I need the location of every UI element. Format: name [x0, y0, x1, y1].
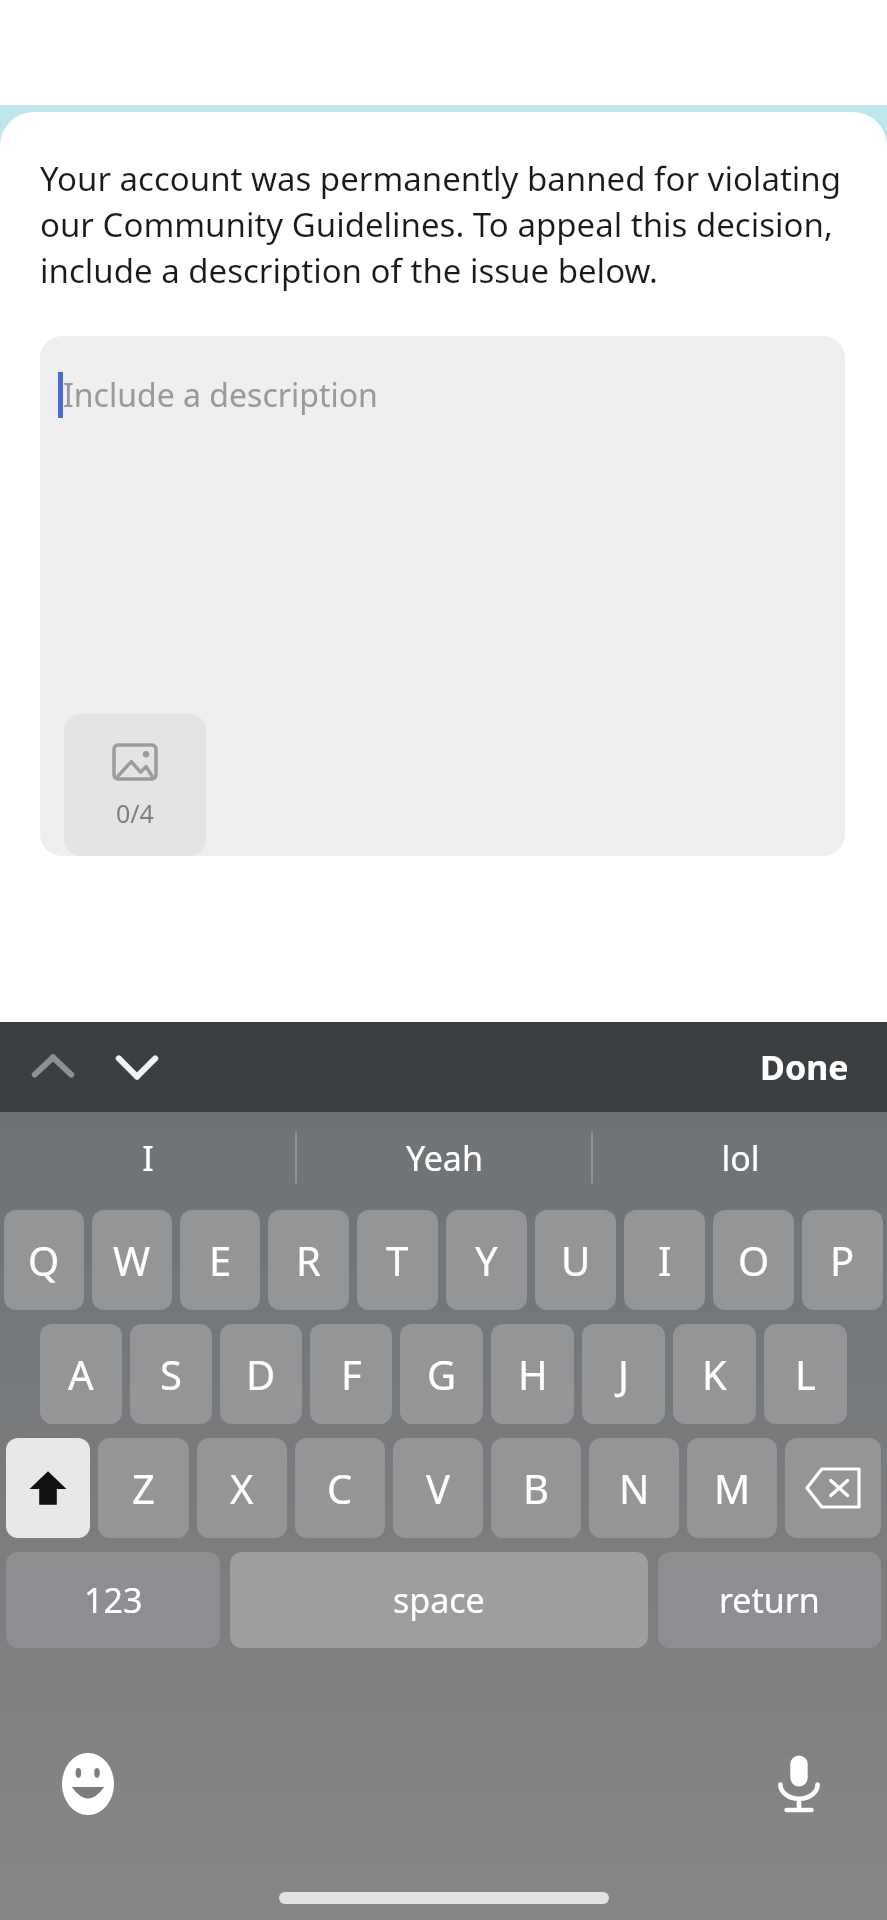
button[interactable]: A — [40, 1324, 122, 1424]
staticText: E — [209, 1233, 232, 1287]
button[interactable]: Next field — [106, 1036, 168, 1098]
staticText: 0/4 — [116, 796, 154, 830]
button[interactable]: W — [92, 1210, 172, 1310]
button[interactable]: Include a description — [40, 336, 845, 856]
staticText: L — [795, 1347, 816, 1401]
button[interactable]: Backspace — [785, 1438, 881, 1538]
button[interactable]: U — [535, 1210, 616, 1310]
staticText: Z — [132, 1461, 155, 1515]
button[interactable]: D — [220, 1324, 302, 1424]
staticText: S — [160, 1347, 182, 1401]
staticText: D — [246, 1347, 276, 1401]
button[interactable]: F — [310, 1324, 392, 1424]
button[interactable]: Q — [4, 1210, 84, 1310]
button[interactable]: space — [230, 1552, 648, 1648]
staticText: Include a description — [63, 373, 378, 417]
staticText: Yeah — [406, 1135, 483, 1181]
button[interactable]: Add photo — [64, 714, 206, 856]
staticText: G — [427, 1347, 457, 1401]
button[interactable]: Done — [750, 1036, 859, 1098]
button[interactable]: H — [491, 1324, 574, 1424]
button[interactable]: Previous field — [22, 1036, 84, 1098]
button[interactable]: Yeah — [297, 1112, 591, 1204]
staticText: Y — [475, 1233, 498, 1287]
staticText: V — [426, 1461, 450, 1515]
staticText: O — [738, 1233, 770, 1287]
staticText: Done — [760, 1044, 849, 1090]
button[interactable]: C — [295, 1438, 385, 1538]
button[interactable]: return — [658, 1552, 881, 1648]
staticText: X — [230, 1461, 254, 1515]
button[interactable]: P — [802, 1210, 883, 1310]
button[interactable]: Voice input — [763, 1748, 835, 1820]
staticText: U — [561, 1233, 591, 1287]
staticText: I — [142, 1135, 154, 1181]
button[interactable]: T — [357, 1210, 438, 1310]
staticText: Q — [28, 1233, 60, 1287]
button[interactable]: X — [197, 1438, 287, 1538]
button[interactable]: Z — [98, 1438, 189, 1538]
staticText: W — [113, 1233, 151, 1287]
button[interactable]: V — [393, 1438, 483, 1538]
staticText: J — [618, 1347, 629, 1401]
button[interactable]: M — [687, 1438, 777, 1538]
button[interactable]: Shift — [6, 1438, 90, 1538]
button[interactable]: Emoji — [52, 1748, 124, 1820]
button[interactable]: E — [180, 1210, 260, 1310]
staticText: H — [518, 1347, 548, 1401]
button[interactable]: J — [582, 1324, 665, 1424]
button[interactable]: N — [589, 1438, 679, 1538]
staticText: N — [619, 1461, 650, 1515]
button[interactable]: G — [400, 1324, 483, 1424]
staticText: M — [714, 1461, 751, 1515]
staticText: I — [658, 1233, 672, 1287]
staticText: lol — [721, 1135, 760, 1181]
staticText: C — [327, 1461, 353, 1515]
button[interactable]: Y — [446, 1210, 527, 1310]
staticText: F — [341, 1347, 362, 1401]
button[interactable]: I — [624, 1210, 705, 1310]
staticText: Your account was permanently banned for … — [40, 156, 845, 293]
staticText: P — [830, 1233, 855, 1287]
staticText: return — [719, 1577, 820, 1623]
button[interactable]: 123 — [6, 1552, 220, 1648]
button[interactable]: S — [130, 1324, 212, 1424]
button[interactable]: I — [0, 1112, 295, 1204]
button[interactable]: B — [491, 1438, 581, 1538]
staticText: 123 — [84, 1577, 143, 1623]
button[interactable]: R — [268, 1210, 349, 1310]
button[interactable]: lol — [593, 1112, 887, 1204]
staticText: T — [386, 1233, 409, 1287]
button[interactable]: K — [673, 1324, 756, 1424]
staticText: A — [68, 1347, 94, 1401]
staticText: K — [702, 1347, 727, 1401]
staticText: B — [523, 1461, 549, 1515]
button[interactable]: O — [713, 1210, 794, 1310]
staticText: space — [393, 1577, 485, 1623]
button[interactable]: L — [764, 1324, 847, 1424]
staticText: R — [296, 1233, 321, 1287]
